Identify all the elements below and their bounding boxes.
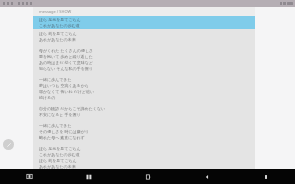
staticText: ほら 足元を見てごらん xyxy=(39,146,81,151)
staticText: あれがあなたの未来 xyxy=(39,37,76,42)
staticText: ほら 前を見てごらん xyxy=(39,158,77,163)
button[interactable]: ほら 足元を見てごらん xyxy=(33,16,255,29)
button[interactable]: Back xyxy=(177,169,236,184)
staticText: これがあなたの歩む道 xyxy=(39,152,80,157)
staticText: 一緒に歩んできた xyxy=(39,123,72,128)
staticText: 愛を抱いて 歩めと繰り返した xyxy=(39,54,93,59)
button[interactable]: message / SHOW xyxy=(33,7,255,16)
staticText: その優しさを 時には嫌がり xyxy=(39,129,89,134)
staticText: 母がくれた たくさんの優しさ xyxy=(39,48,94,53)
staticText: ほら 足元を見てごらん xyxy=(39,17,81,22)
staticText: これがあなたの歩む道 xyxy=(39,23,80,28)
staticText: あれがあなたの未来 xyxy=(39,164,76,169)
staticText: 自分の物語 だからこそ諦めたくない xyxy=(39,106,106,111)
button[interactable]: Recents xyxy=(59,169,118,184)
staticText: 不安になると 手を握り xyxy=(39,112,81,117)
staticText: 一緒に歩んできた xyxy=(39,77,72,82)
staticText: 届かなくて 怖いね だけど追い xyxy=(39,89,95,94)
button[interactable]: Apps xyxy=(0,169,59,184)
staticText: ほら 前を見てごらん xyxy=(39,31,77,36)
staticText: message / SHOW xyxy=(39,9,72,14)
staticText: 夢はいつも 空高くあるから xyxy=(39,83,89,88)
button[interactable]: Home xyxy=(118,169,177,184)
staticText: 離れた母へ 素直になれず xyxy=(39,135,85,140)
button[interactable]: Edit xyxy=(3,139,14,150)
button[interactable]: Menu xyxy=(236,169,295,184)
staticText: 知らない そんな私の手を握り xyxy=(39,66,93,71)
staticText: あの時はまだ 幼くて意味など xyxy=(39,60,93,65)
staticText: 続けるの xyxy=(39,95,56,100)
